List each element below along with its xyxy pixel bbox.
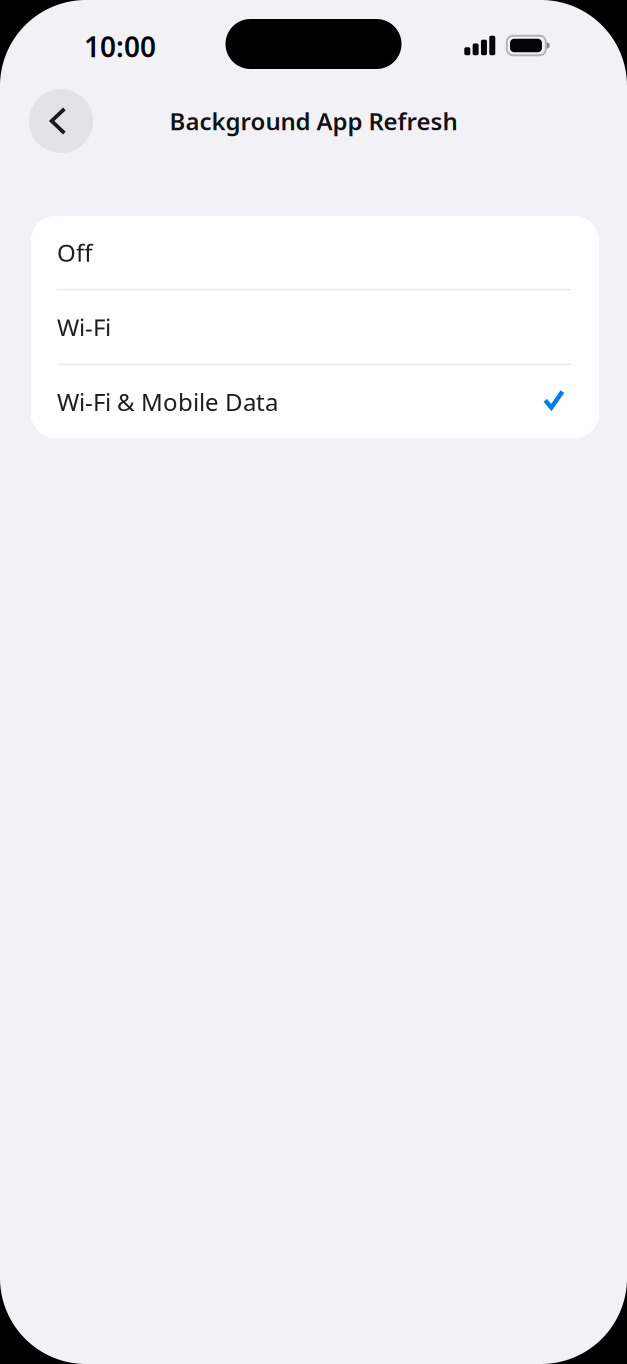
button[interactable]: Back — [29, 89, 93, 153]
button[interactable]: Wi-Fi — [31, 291, 599, 364]
staticText: Background App Refresh — [169, 105, 457, 137]
button[interactable]: Off — [31, 216, 599, 289]
staticText: Off — [57, 237, 93, 268]
staticText: 10:00 — [84, 28, 156, 65]
staticText: Wi-Fi & Mobile Data — [57, 386, 278, 418]
staticText: Wi-Fi — [57, 311, 111, 343]
button[interactable]: Wi-Fi & Mobile Data — [31, 365, 599, 438]
